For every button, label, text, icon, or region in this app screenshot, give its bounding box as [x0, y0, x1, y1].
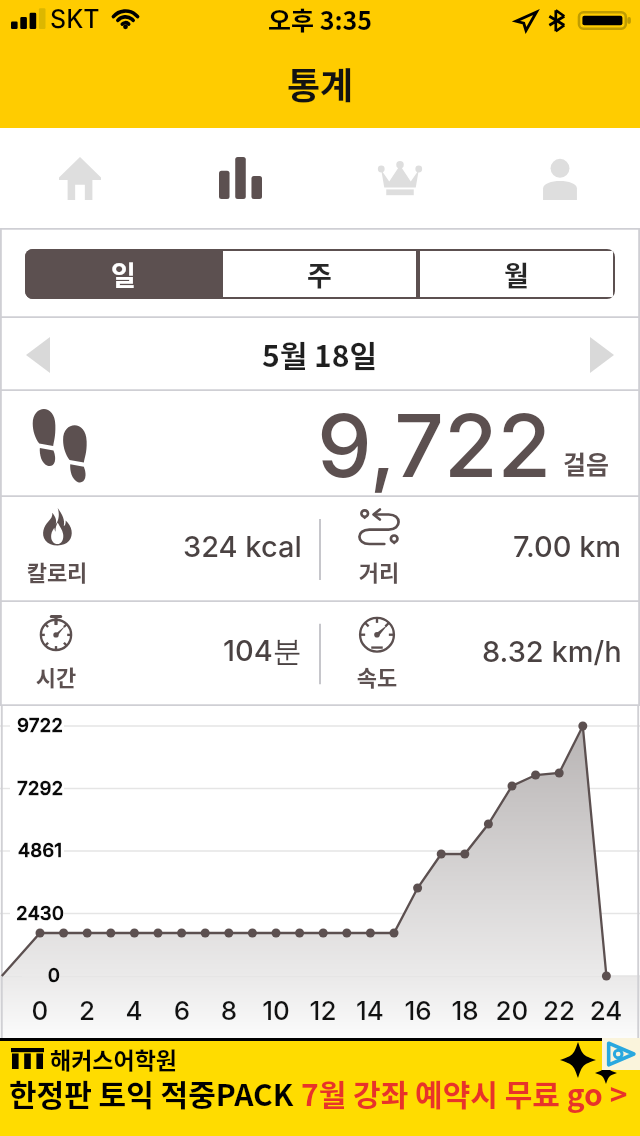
- staticText: 5월 18일: [262, 332, 378, 375]
- staticText: 8: [209, 995, 249, 1026]
- staticText: 9722: [14, 714, 66, 737]
- staticText: 거리: [337, 555, 421, 587]
- staticText: 12: [303, 995, 343, 1026]
- button[interactable]: Profile: [480, 128, 640, 228]
- staticText: 324 kcal: [183, 529, 302, 564]
- staticText: 9,722: [317, 393, 552, 498]
- button[interactable]: 일: [25, 249, 221, 299]
- staticText: 4: [114, 995, 154, 1026]
- button[interactable]: Statistics: [160, 128, 320, 228]
- staticText: 속도: [335, 660, 419, 692]
- staticText: 104분: [223, 633, 302, 670]
- button[interactable]: Next day: [540, 319, 640, 391]
- button[interactable]: 월: [420, 251, 613, 297]
- staticText: 20: [492, 995, 532, 1026]
- staticText: 일: [111, 255, 136, 294]
- staticText: 0: [28, 964, 80, 987]
- button[interactable]: Home: [0, 128, 160, 228]
- staticText: 걸음: [563, 445, 610, 481]
- staticText: 해커스어학원: [50, 1042, 177, 1075]
- staticText: 한정판 토익 적중PACK: [9, 1071, 301, 1114]
- button[interactable]: 칼로리: [0, 497, 320, 602]
- staticText: 4861: [14, 839, 66, 862]
- button[interactable]: 속도: [320, 602, 640, 706]
- staticText: 6: [162, 995, 202, 1026]
- staticText: 칼로리: [20, 555, 94, 587]
- staticText: 2430: [14, 902, 66, 925]
- button[interactable]: Previous day: [0, 319, 100, 391]
- staticText: 시간: [16, 660, 96, 692]
- staticText: 2: [67, 995, 107, 1026]
- staticText: 8.32 km/h: [482, 634, 622, 669]
- button[interactable]: 주: [223, 251, 416, 297]
- staticText: SKT: [50, 4, 100, 34]
- staticText: 월: [504, 255, 529, 294]
- staticText: 14: [350, 995, 390, 1026]
- button[interactable]: 시간: [0, 602, 320, 706]
- staticText: 10: [256, 995, 296, 1026]
- staticText: 16: [398, 995, 438, 1026]
- staticText: 18: [445, 995, 485, 1026]
- button[interactable]: Advertisement: [0, 1038, 640, 1136]
- staticText: 7월 강좌 예약시 무료 go >: [301, 1071, 628, 1114]
- staticText: 22: [539, 995, 579, 1026]
- staticText: 7.00 km: [513, 529, 622, 564]
- staticText: 주: [307, 255, 332, 294]
- staticText: 통계: [287, 57, 354, 109]
- staticText: 24: [586, 995, 626, 1026]
- button[interactable]: Ranking: [320, 128, 480, 228]
- button[interactable]: 9,722: [0, 391, 640, 497]
- staticText: 0: [20, 995, 60, 1026]
- staticText: 7292: [14, 777, 66, 800]
- staticText: 오후 3:35: [268, 1, 373, 37]
- button[interactable]: 거리: [320, 497, 640, 602]
